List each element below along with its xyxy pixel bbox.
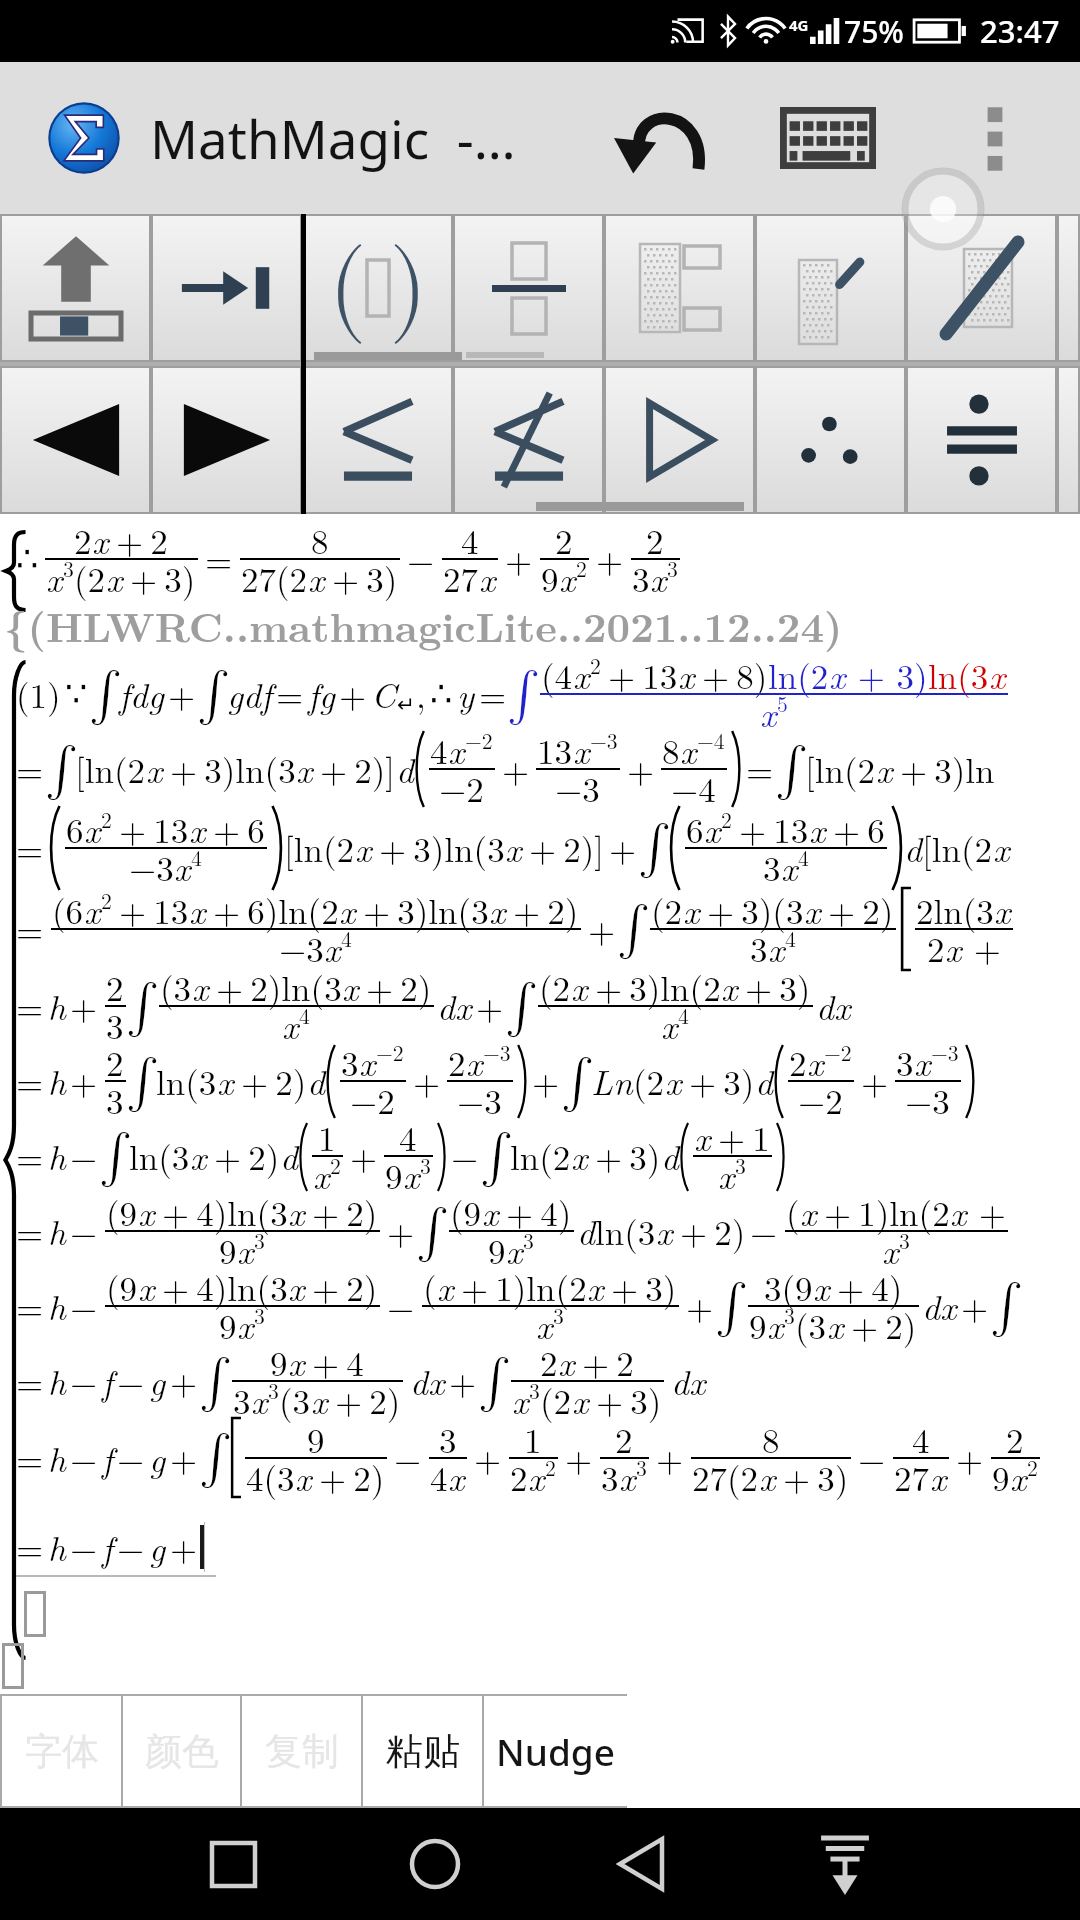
staticText: ∫ — [99, 1132, 133, 1182]
staticText: 3 — [763, 842, 781, 892]
staticText: = — [276, 669, 304, 719]
staticText: + 4)ln(3 — [155, 1187, 288, 1237]
staticText: = — [16, 904, 44, 954]
staticText: x — [138, 1262, 155, 1312]
staticText: + 8) — [695, 650, 768, 700]
staticText: 4 — [299, 1000, 310, 1031]
button[interactable] — [757, 368, 904, 512]
staticText: x — [339, 885, 356, 935]
button[interactable] — [606, 368, 753, 512]
button[interactable] — [2, 216, 149, 360]
staticText: h — [48, 1206, 66, 1256]
staticText: x — [650, 553, 667, 603]
staticText: 2 — [789, 1037, 807, 1087]
staticText: x — [84, 804, 101, 854]
staticText: = — [16, 1356, 44, 1406]
staticText: 2 — [101, 885, 112, 916]
button[interactable]: Back — [586, 1809, 696, 1919]
button[interactable]: ( — [304, 216, 451, 360]
staticText: −4 — [671, 763, 716, 813]
button[interactable] — [908, 216, 1055, 360]
button[interactable] — [153, 368, 300, 512]
staticText: + 3) — [738, 962, 811, 1012]
button[interactable]: Undo — [600, 76, 724, 200]
staticText: x — [768, 923, 785, 973]
staticText: (3 — [160, 962, 192, 1012]
staticText: 0 — [483, 1046, 501, 1096]
button[interactable]: Recents — [178, 1809, 288, 1919]
staticText: x — [84, 885, 101, 935]
staticText: x — [282, 1000, 299, 1050]
staticText: 3 — [632, 553, 650, 603]
button[interactable] — [304, 368, 451, 512]
button[interactable]: Hide navigation bar — [790, 1809, 900, 1919]
staticText: ( — [419, 1212, 433, 1262]
button[interactable] — [606, 216, 753, 360]
staticText: + 4 — [305, 1337, 364, 1387]
button[interactable]: 复制 — [242, 1696, 361, 1806]
staticText: 4 — [191, 842, 202, 873]
staticText: ln(3 — [156, 1056, 217, 1106]
staticText: + — [532, 1056, 560, 1106]
button[interactable]: Nudge — [484, 1696, 627, 1806]
staticText: (2 — [74, 553, 106, 603]
staticText: = — [16, 1131, 44, 1181]
button[interactable] — [2, 368, 149, 512]
staticText: x — [355, 823, 372, 873]
staticText: 2 — [101, 804, 112, 835]
button[interactable]: More options — [942, 85, 1048, 191]
staticText: d — [755, 1056, 773, 1106]
staticText: + — [656, 1433, 684, 1483]
staticText: 8 — [662, 725, 680, 775]
staticText: 0 — [376, 1046, 394, 1096]
button[interactable]: 字体 — [2, 1696, 121, 1806]
button[interactable] — [908, 368, 1055, 512]
staticText: 0 — [63, 562, 81, 612]
button[interactable] — [153, 216, 300, 360]
staticText: {(HLWRC..mathmagicLite..2021..12..24) — [4, 596, 843, 655]
staticText: x — [489, 885, 506, 935]
staticText: x — [479, 553, 496, 603]
staticText: [ln(2 — [805, 744, 876, 794]
staticText: x — [482, 1187, 499, 1237]
button[interactable]: Keyboard — [766, 76, 890, 200]
staticText: + 3) — [682, 1056, 755, 1106]
staticText: 4 — [785, 923, 796, 954]
button[interactable]: 粘贴 — [363, 1696, 482, 1806]
staticText: 0 — [1027, 1461, 1045, 1511]
staticText: ∫ — [715, 1282, 749, 1332]
staticText: 3 — [667, 553, 678, 584]
staticText: ln(3 — [595, 1206, 656, 1256]
button[interactable] — [757, 216, 904, 360]
staticText: 3 — [233, 1375, 251, 1425]
staticText: x — [189, 804, 206, 854]
staticText: + — [170, 1433, 198, 1483]
staticText: −3 — [457, 1075, 502, 1125]
staticText: x — [704, 804, 721, 854]
staticText: −2 — [439, 763, 484, 813]
staticText: 3 — [341, 1037, 359, 1087]
button[interactable] — [455, 368, 602, 512]
staticText: ( — [483, 1137, 497, 1187]
staticText: x — [251, 1375, 268, 1425]
button[interactable] — [1059, 368, 1078, 512]
button[interactable] — [1059, 216, 1078, 360]
button[interactable]: Home — [380, 1809, 490, 1919]
staticText: 粘贴 — [386, 1728, 460, 1775]
staticText: h — [48, 1281, 66, 1331]
staticText: x — [308, 553, 325, 603]
staticText: ( — [993, 1287, 1007, 1337]
staticText: + 1)ln(2 — [454, 1262, 587, 1312]
staticText: 3 — [636, 1452, 647, 1483]
staticText: −3 — [555, 763, 600, 813]
button[interactable] — [455, 216, 602, 360]
staticText: ( — [202, 1438, 216, 1488]
staticText: 4 — [461, 515, 479, 565]
staticText: ( — [510, 675, 524, 725]
staticText: ( — [620, 909, 634, 959]
staticText: ∵ — [65, 674, 88, 715]
staticText: h — [48, 1056, 66, 1106]
button[interactable]: 颜色 — [123, 1696, 240, 1806]
staticText: + 13 — [732, 804, 809, 854]
staticText: 9 — [992, 1452, 1010, 1502]
